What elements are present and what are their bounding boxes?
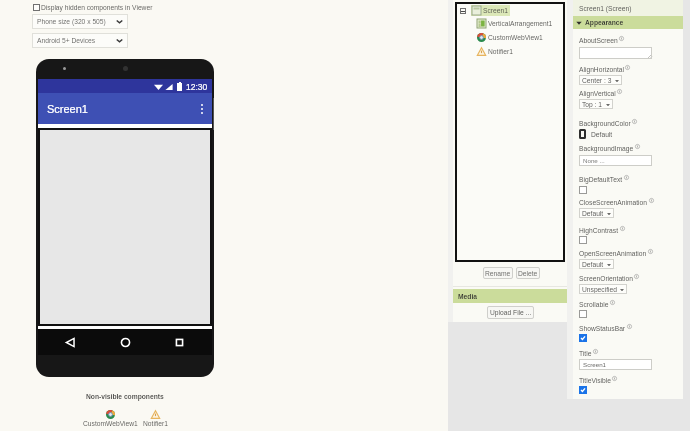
button[interactable]: Rename (483, 267, 513, 279)
button[interactable]: Unchecked (579, 310, 587, 318)
button[interactable]: Android 5+ Devices (32, 33, 128, 48)
staticText: BackgroundImage (579, 145, 634, 152)
staticText: ScreenOrientation (579, 275, 633, 282)
staticText: Non-visible components (86, 393, 164, 400)
staticText: Top : 1 (582, 101, 603, 108)
staticText: Unspecified (582, 286, 617, 293)
staticText: Rename (485, 270, 511, 277)
button[interactable]: AboutScreen text area (579, 47, 652, 59)
button[interactable]: Default (579, 208, 614, 218)
button[interactable]: Back (65, 337, 76, 348)
button[interactable]: Screen1 (38, 93, 212, 124)
button[interactable]: None ... (579, 155, 652, 166)
button[interactable]: Media (453, 289, 567, 303)
staticText: Upload File ... (490, 309, 532, 316)
staticText: Notifier1 (143, 420, 168, 427)
staticText: TitleVisible (579, 377, 611, 384)
staticText: Appearance (585, 19, 624, 26)
staticText: Default (582, 210, 604, 217)
staticText: Scrollable (579, 301, 609, 308)
button[interactable]: Upload File ... (487, 306, 534, 319)
staticText: BigDefaultText (579, 176, 623, 183)
button[interactable]: Phone size (320 x 505) (32, 14, 128, 29)
button[interactable]: Delete (516, 267, 540, 279)
staticText: CloseScreenAnimation (579, 199, 648, 206)
button[interactable]: CustomWebView1 (477, 33, 543, 42)
staticText: Phone size (320 x 505) (37, 18, 106, 25)
staticText: AboutScreen (579, 37, 618, 44)
button[interactable]: Appearance (573, 16, 683, 29)
staticText: Default (591, 131, 613, 138)
button[interactable]: Recents (174, 337, 185, 348)
button[interactable]: Default (579, 259, 614, 269)
staticText: Delete (518, 270, 538, 277)
button[interactable]: Top : 1 (579, 99, 613, 109)
staticText: AlignVertical (579, 90, 616, 97)
staticText: None ... (583, 157, 605, 164)
button[interactable]: Default (579, 129, 613, 139)
button[interactable]: Notifier1 (477, 47, 513, 56)
staticText: Screen1 (483, 7, 508, 14)
button[interactable]: Checked (579, 334, 587, 342)
staticText: Android 5+ Devices (37, 37, 96, 44)
staticText: 12:30 (186, 82, 208, 91)
staticText: Center : 3 (582, 77, 612, 84)
staticText: Screen1 (Screen) (579, 5, 632, 12)
staticText: AlignHorizontal (579, 66, 624, 73)
button[interactable]: Center : 3 (579, 75, 622, 85)
staticText: Screen1 (47, 103, 88, 115)
button[interactable]: Unchecked (579, 236, 587, 244)
button[interactable]: Display hidden components in Viewer (33, 4, 153, 11)
button[interactable]: Screen1 (460, 5, 510, 16)
staticText: Default (582, 261, 604, 268)
button[interactable]: Checked (579, 386, 587, 394)
staticText: Display hidden components in Viewer (41, 4, 153, 11)
staticText: Notifier1 (488, 48, 513, 55)
button[interactable]: Unchecked (579, 186, 587, 194)
staticText: ShowStatusBar (579, 325, 626, 332)
button[interactable]: VerticalArrangement1 (477, 19, 553, 28)
staticText: CustomWebView1 (488, 34, 543, 41)
staticText: Title (579, 350, 592, 357)
staticText: BackgroundColor (579, 120, 631, 127)
staticText: OpenScreenAnimation (579, 250, 647, 257)
staticText: CustomWebView1 (83, 420, 138, 427)
staticText: Screen1 (583, 361, 607, 368)
button[interactable]: More options (201, 104, 203, 114)
staticText: HighContrast (579, 227, 619, 234)
button[interactable]: Unspecified (579, 284, 627, 294)
button[interactable]: Screen1 (579, 359, 652, 370)
staticText: Media (458, 293, 477, 300)
staticText: VerticalArrangement1 (488, 20, 553, 27)
button[interactable]: Home (120, 337, 131, 348)
